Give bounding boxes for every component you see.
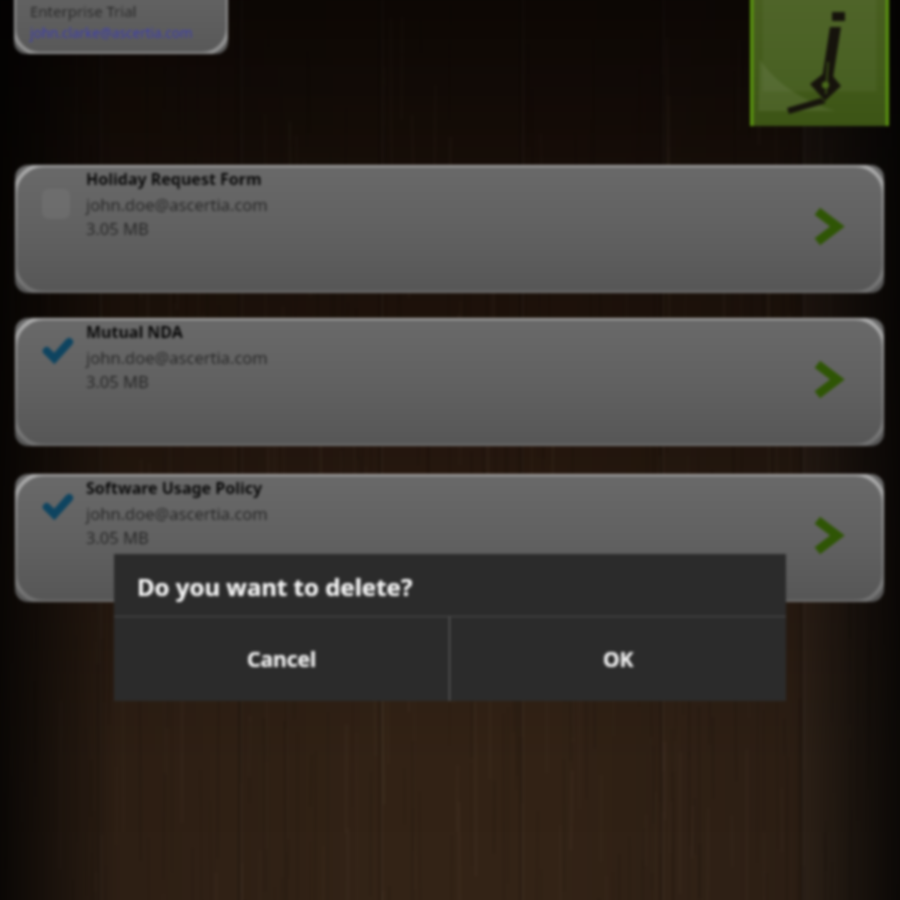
button[interactable]: Mutual NDA xyxy=(15,318,884,446)
button[interactable]: Ascertia logo xyxy=(750,0,889,126)
staticText: john.doe@ascertia.com xyxy=(86,193,268,215)
button[interactable]: Open document xyxy=(798,507,854,563)
button[interactable]: Open document xyxy=(798,198,854,254)
staticText: john.clarke@ascertia.com xyxy=(30,24,193,42)
button[interactable]: Open document xyxy=(798,351,854,407)
staticText: OK xyxy=(603,645,634,674)
staticText: Enterprise Trial xyxy=(30,1,137,21)
staticText: Holiday Request Form xyxy=(86,168,262,190)
staticText: Mutual NDA xyxy=(86,321,183,343)
button[interactable]: Cancel xyxy=(114,617,449,701)
staticText: john.doe@ascertia.com xyxy=(86,346,268,368)
staticText: Cancel xyxy=(247,645,317,674)
button[interactable]: Holiday Request Form xyxy=(15,165,884,293)
button[interactable]: Software Usage Policy xyxy=(15,474,884,602)
button[interactable]: OK xyxy=(450,617,786,701)
staticText: john.doe@ascertia.com xyxy=(86,502,268,524)
button[interactable]: John Clarke xyxy=(14,0,228,54)
staticText: 3.05 MB xyxy=(86,217,149,239)
staticText: 3.05 MB xyxy=(86,526,149,548)
staticText: Do you want to delete? xyxy=(137,570,413,603)
staticText: Software Usage Policy xyxy=(86,477,263,499)
staticText: 3.05 MB xyxy=(86,370,149,392)
